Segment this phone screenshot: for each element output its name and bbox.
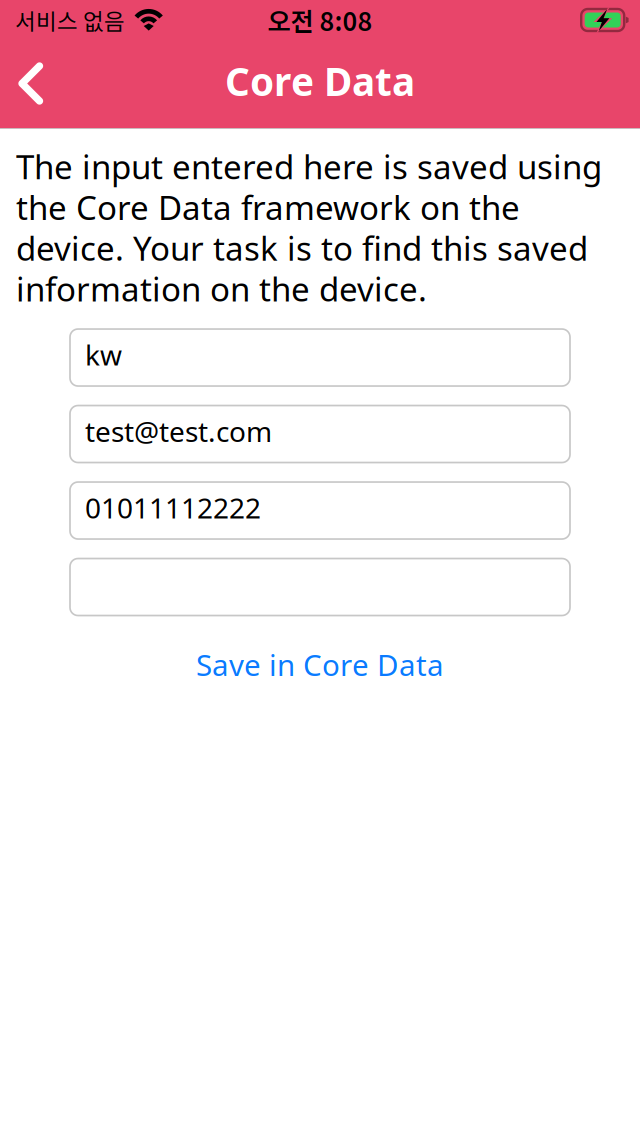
staticText: 01011112222 <box>85 488 261 527</box>
staticText: 서비스 없음 <box>15 4 125 36</box>
button[interactable]: Phone <box>70 482 570 539</box>
staticText: Core Data <box>225 55 415 107</box>
staticText: test@test.com <box>85 412 272 450</box>
staticText: kw <box>85 335 122 374</box>
button[interactable]: Name <box>70 329 570 386</box>
staticText: 오전 8:08 <box>267 2 372 38</box>
staticText: Save in Core Data <box>196 644 444 685</box>
button[interactable]: Back <box>0 40 62 128</box>
button[interactable]: Save in Core Data <box>70 636 570 692</box>
button[interactable]: Note <box>70 558 570 615</box>
staticText: The input entered here is saved using th… <box>16 146 602 309</box>
button[interactable]: Email <box>70 405 570 462</box>
